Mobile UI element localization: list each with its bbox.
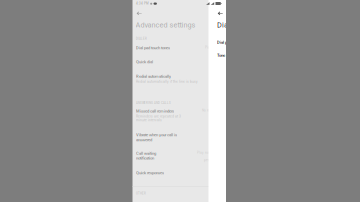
staticText: Redial automatically <box>136 74 171 79</box>
button[interactable]: Call waiting notification <box>132 151 226 162</box>
button[interactable]: Dial pad touch tones <box>132 45 226 50</box>
button[interactable]: Tone duration <box>217 53 239 58</box>
button[interactable]: Quick responses <box>132 170 226 175</box>
staticText: No reminders <box>202 109 223 112</box>
staticText: Quick responses <box>136 170 164 175</box>
staticText: Reminders are repeated at 3 minute inter… <box>136 114 181 122</box>
staticText: 4:34 PM <box>136 2 149 5</box>
button[interactable]: Back <box>134 9 144 17</box>
staticText: Dial pad touch tones <box>217 21 284 29</box>
staticText: Piano keys <box>205 45 223 49</box>
staticText: Quick dial <box>136 59 153 64</box>
button[interactable]: Quick dial <box>132 59 226 64</box>
staticText: Redial automatically if the line is busy <box>136 79 198 83</box>
staticText: Tone duration <box>217 53 239 58</box>
staticText: OTHER <box>136 192 146 195</box>
button[interactable]: Redial automatically <box>132 74 226 83</box>
button[interactable]: Missed call reminders <box>132 109 226 122</box>
button[interactable]: Dial pad touch tones <box>217 40 251 45</box>
staticText: Dial pad touch tones <box>136 45 170 50</box>
staticText: Vibrate when your call is answered <box>136 132 177 142</box>
staticText: Advanced settings <box>136 21 196 29</box>
staticText: Call waiting notification <box>136 151 156 161</box>
staticText: Missed call reminders <box>136 109 174 113</box>
button[interactable]: Back <box>215 9 225 17</box>
button[interactable]: Vibrate when your call is answered <box>132 132 226 142</box>
staticText: Dial pad touch tones <box>217 40 251 45</box>
staticText: ANSWERING AND CALLS <box>136 101 171 105</box>
staticText: Play notification sound periodically <box>197 151 223 162</box>
staticText: DIALER <box>136 37 147 40</box>
